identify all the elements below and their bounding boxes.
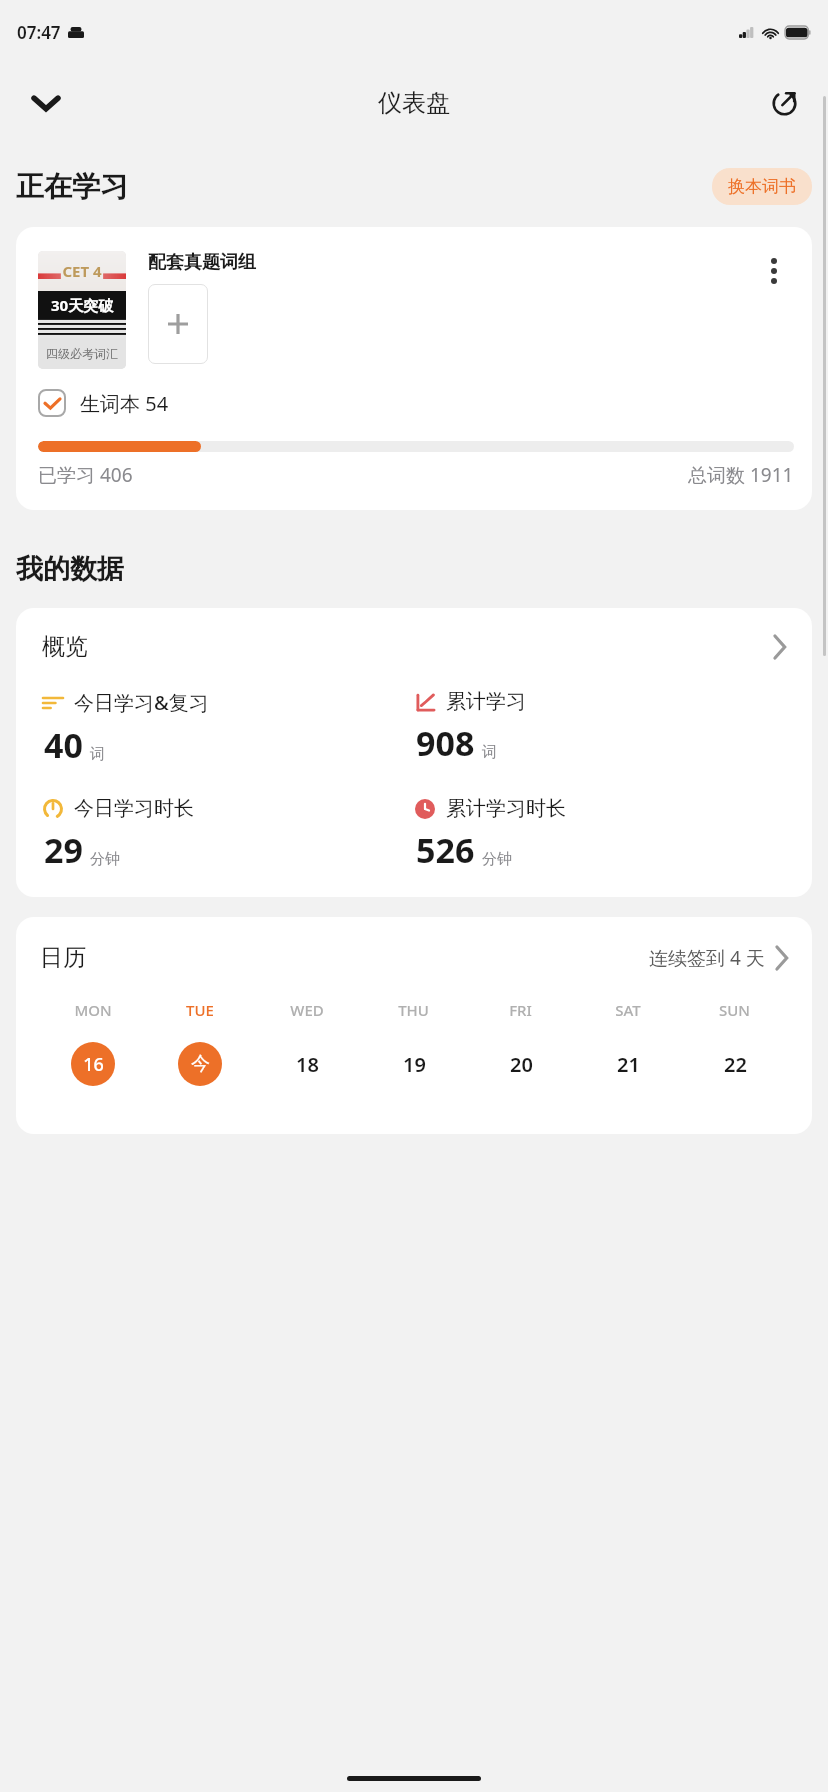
staticText: 30天突破 [51, 295, 114, 315]
staticText: 分钟 [482, 850, 512, 869]
staticText: 累计学习时长 [446, 796, 566, 821]
button[interactable]: 生词本 54 [38, 389, 169, 417]
staticText: 总词数 1911 [688, 462, 794, 488]
staticText: SUN [719, 1000, 750, 1020]
staticText: 19 [403, 1051, 426, 1078]
button[interactable]: More options [754, 251, 794, 291]
staticText: 词 [90, 745, 105, 764]
staticText: THU [398, 1000, 429, 1020]
button[interactable]: Add word group [148, 284, 208, 364]
staticText: 我的数据 [16, 552, 124, 586]
staticText: 16 [83, 1052, 104, 1077]
staticText: 词 [482, 743, 497, 762]
staticText: 40 [44, 722, 83, 768]
staticText: 配套真题词组 [148, 251, 256, 274]
button[interactable]: 22 [713, 1042, 757, 1086]
button[interactable]: Share [760, 79, 808, 127]
button[interactable]: Collapse [22, 79, 70, 127]
staticText: 07:47 [17, 21, 61, 44]
staticText: 今日学习时长 [74, 796, 194, 821]
staticText: 908 [416, 720, 475, 766]
staticText: 526 [416, 827, 475, 873]
staticText: MON [74, 1000, 112, 1020]
button[interactable]: 18 [285, 1042, 329, 1086]
staticText: 今 [191, 1052, 210, 1076]
button[interactable]: 日历 [40, 943, 788, 972]
button[interactable]: CET 4 [38, 251, 126, 369]
staticText: 正在学习 [16, 169, 128, 204]
staticText: SAT [615, 1000, 641, 1020]
staticText: 概览 [42, 632, 88, 661]
staticText: FRI [509, 1000, 532, 1020]
staticText: 累计学习 [446, 689, 526, 714]
staticText: 今日学习&复习 [74, 689, 209, 716]
button[interactable]: 16 [71, 1042, 115, 1086]
staticText: TUE [186, 1000, 214, 1020]
staticText: CET 4 [62, 261, 102, 281]
staticText: 四级必考词汇 [46, 346, 118, 361]
button[interactable]: CET 4 [16, 227, 812, 510]
button[interactable]: 今 [178, 1042, 222, 1086]
staticText: 已学习 406 [38, 462, 133, 488]
button[interactable]: 20 [499, 1042, 543, 1086]
button[interactable]: 19 [392, 1042, 436, 1086]
staticText: 21 [617, 1051, 640, 1078]
staticText: 20 [510, 1051, 533, 1078]
button[interactable]: 换本词书 [712, 168, 812, 205]
staticText: 22 [724, 1051, 747, 1078]
button[interactable]: 21 [606, 1042, 650, 1086]
staticText: 换本词书 [728, 176, 796, 197]
button[interactable]: 概览 [16, 608, 812, 897]
staticText: 18 [296, 1051, 319, 1078]
staticText: 仪表盘 [378, 88, 450, 118]
staticText: 连续签到 4 天 [649, 945, 765, 971]
staticText: WED [290, 1000, 324, 1020]
staticText: 分钟 [90, 850, 120, 869]
staticText: 生词本 54 [80, 390, 169, 417]
staticText: 日历 [40, 943, 86, 972]
staticText: 29 [44, 827, 83, 873]
